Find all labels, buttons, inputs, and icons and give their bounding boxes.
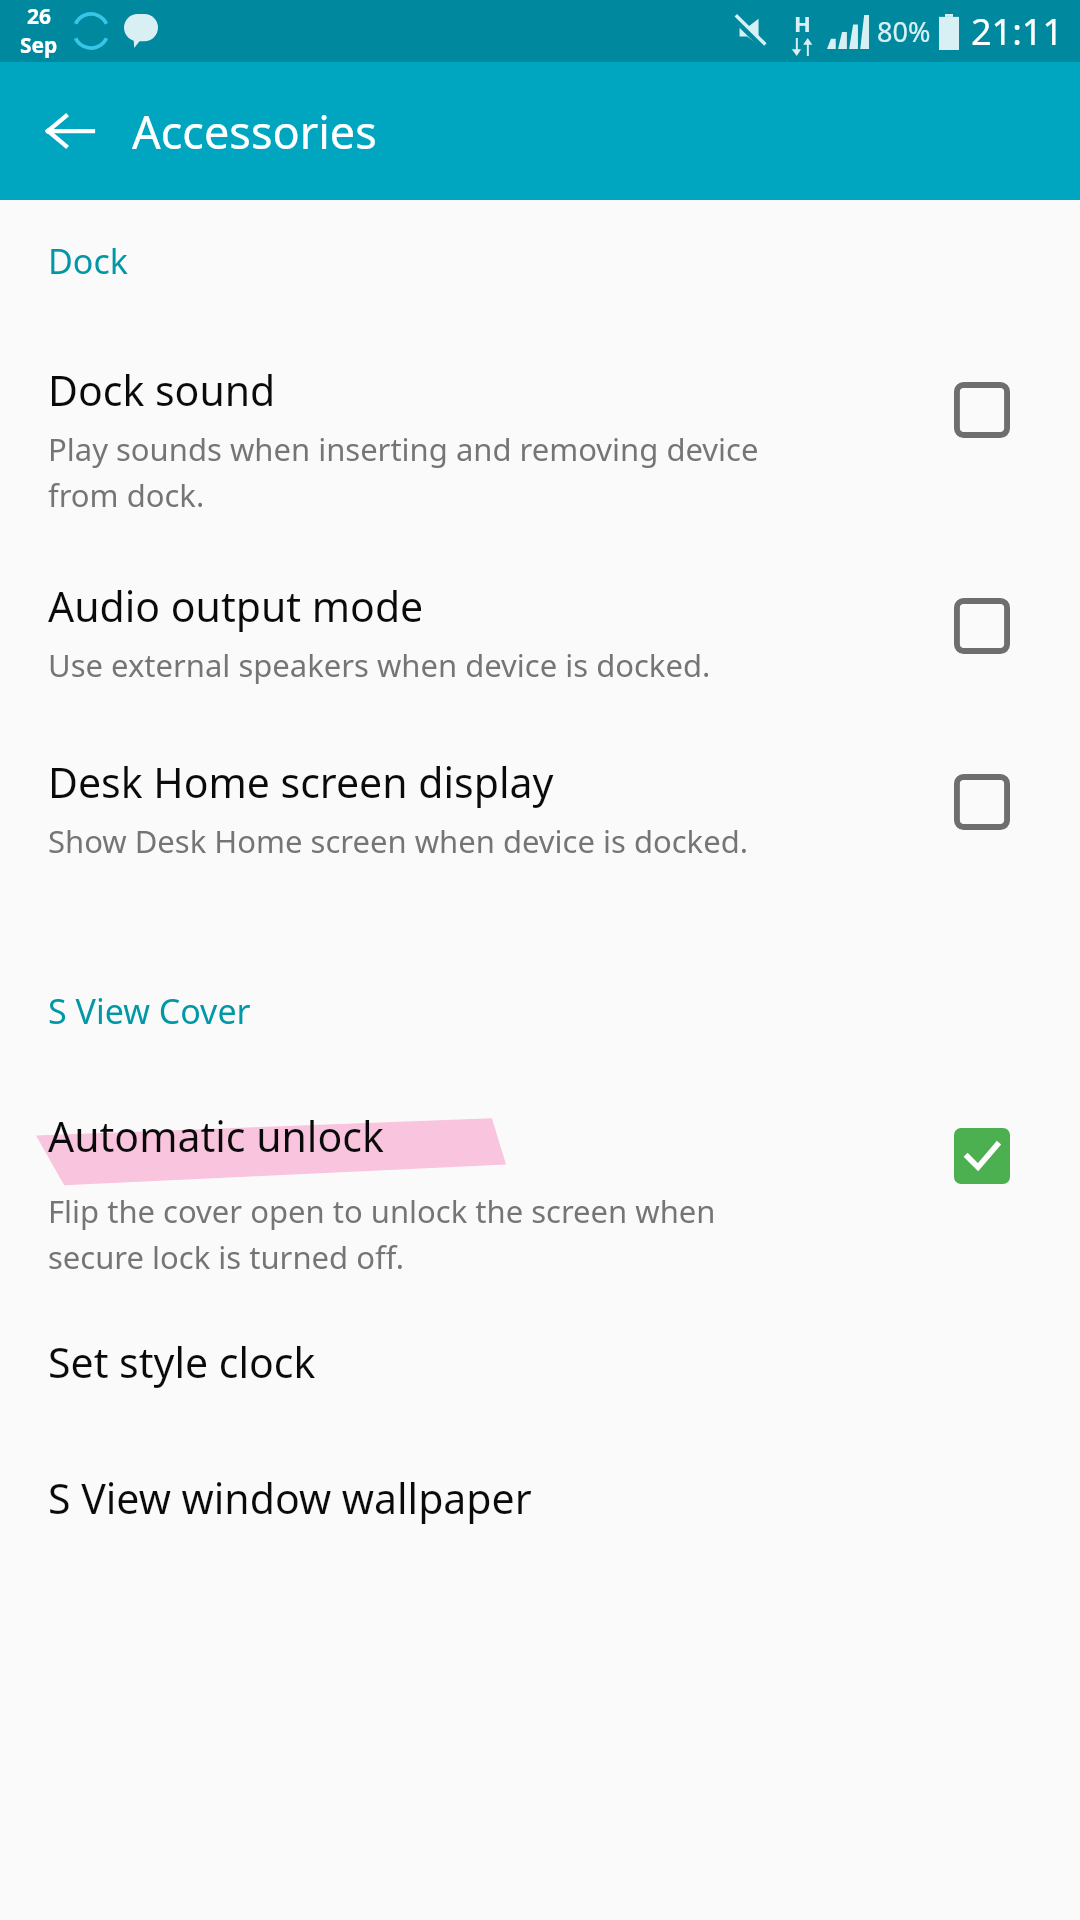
button[interactable]: Dock sound, off bbox=[954, 382, 1010, 438]
staticText: Sep bbox=[20, 31, 58, 60]
staticText: Play sounds when inserting and removing … bbox=[48, 428, 759, 516]
staticText: H bbox=[794, 8, 811, 38]
staticText: Dock sound bbox=[48, 362, 276, 418]
staticText: Set style clock bbox=[48, 1334, 316, 1390]
staticText: Automatic unlock bbox=[48, 1108, 384, 1164]
button[interactable]: Audio output mode, off bbox=[954, 598, 1010, 654]
staticText: S View window wallpaper bbox=[48, 1470, 532, 1526]
staticText: Flip the cover open to unlock the screen… bbox=[48, 1190, 716, 1278]
button[interactable]: Audio output mode bbox=[0, 578, 1080, 686]
button[interactable]: Automatic unlock, on bbox=[954, 1128, 1010, 1184]
button[interactable]: S View window wallpaper bbox=[0, 1470, 1080, 1526]
staticText: 26 bbox=[27, 2, 52, 31]
button[interactable]: Set style clock bbox=[0, 1334, 1080, 1390]
staticText: 80% bbox=[877, 13, 931, 50]
staticText: 21:11 bbox=[971, 7, 1064, 56]
button[interactable]: Desk Home screen display, off bbox=[954, 774, 1010, 830]
staticText: Accessories bbox=[132, 101, 377, 162]
staticText: Dock bbox=[48, 238, 128, 284]
button[interactable]: Desk Home screen display bbox=[0, 754, 1080, 862]
button[interactable]: Back bbox=[30, 91, 110, 171]
staticText: S View Cover bbox=[48, 988, 251, 1034]
staticText: Audio output mode bbox=[48, 578, 424, 634]
button[interactable]: Automatic unlock bbox=[0, 1108, 1080, 1278]
staticText: Show Desk Home screen when device is doc… bbox=[48, 820, 749, 862]
staticText: Desk Home screen display bbox=[48, 754, 554, 810]
staticText: Use external speakers when device is doc… bbox=[48, 644, 711, 686]
button[interactable]: Dock sound bbox=[0, 362, 1080, 516]
